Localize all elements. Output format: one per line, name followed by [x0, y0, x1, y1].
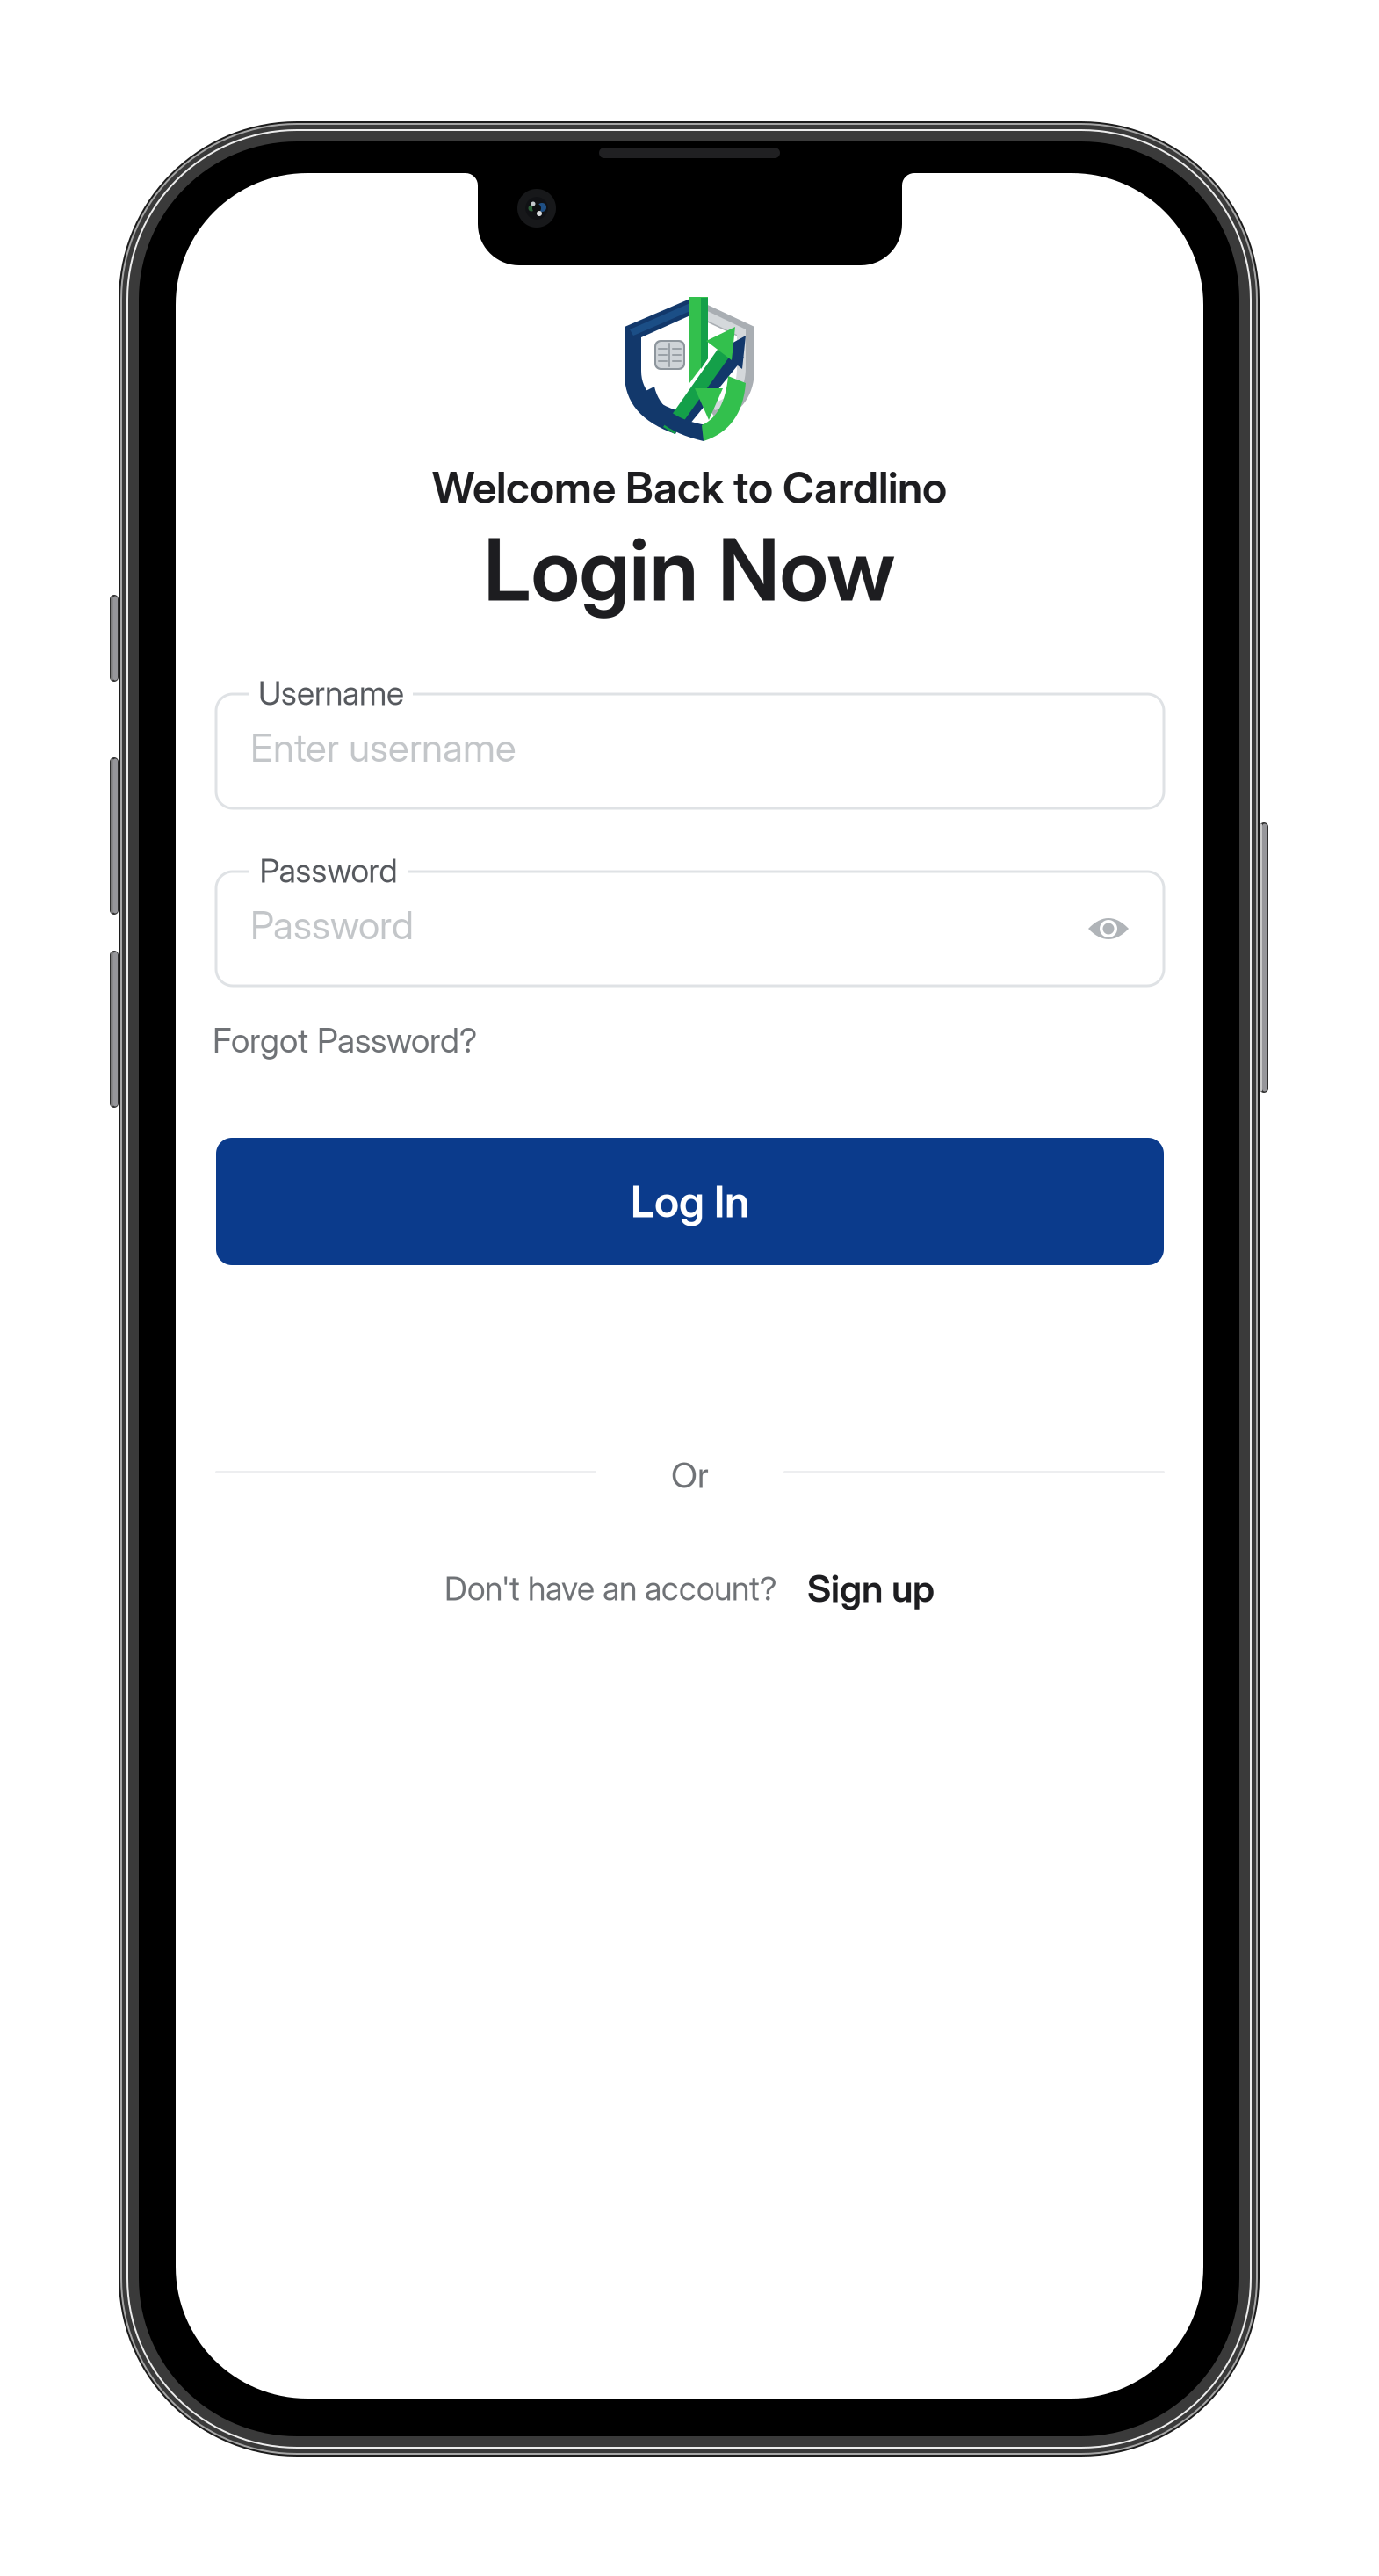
staticText: Password	[260, 851, 397, 891]
button[interactable]: Log In	[216, 1138, 1164, 1265]
staticText: Or	[671, 1454, 709, 1496]
staticText: Don't have an account?	[444, 1569, 777, 1608]
staticText: Password	[250, 902, 414, 949]
staticText: Log In	[631, 1175, 749, 1228]
staticText: Username	[258, 673, 404, 713]
staticText: Sign up	[807, 1566, 935, 1611]
button[interactable]: Show password	[1087, 914, 1130, 944]
staticText: Forgot Password?	[213, 1020, 477, 1061]
staticText: Login Now	[484, 518, 895, 621]
button[interactable]: Forgot Password?	[213, 1016, 494, 1065]
staticText: Enter username	[250, 724, 516, 771]
button[interactable]: Sign up	[807, 1566, 935, 1611]
staticText: Welcome Back to Cardlino	[432, 461, 947, 514]
